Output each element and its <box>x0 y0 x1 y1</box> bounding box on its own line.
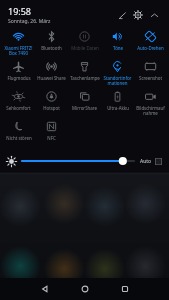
button[interactable]: Einstellungen <box>130 7 146 23</box>
staticText: MirrorShare <box>72 105 97 111</box>
button[interactable]: Auto <box>139 158 163 165</box>
staticText: 19:58 <box>8 5 32 17</box>
staticText: Hotspot <box>43 105 60 111</box>
button[interactable]: NFC <box>35 120 68 141</box>
button[interactable]: Screenshot <box>134 60 167 81</box>
button[interactable]: Ultra-Akku <box>101 90 134 111</box>
button[interactable]: Helligkeit <box>22 155 134 167</box>
button[interactable]: Nicht stören <box>2 120 35 141</box>
staticText: Bluetooth <box>41 45 62 51</box>
staticText: Ultra-Akku <box>107 105 129 111</box>
staticText: Taschenlampe <box>70 75 100 81</box>
button[interactable]: Einklappen <box>146 7 162 23</box>
staticText: Auto <box>140 158 152 165</box>
staticText: Standortinformationen <box>102 75 133 87</box>
button[interactable]: Bildschirmaufnahme <box>134 90 167 117</box>
button[interactable]: Huawei Share <box>35 60 68 81</box>
staticText: Bildschirmaufnahme <box>135 105 166 117</box>
button[interactable]: Xiaomi FRITZ!Box 7490 <box>2 30 35 57</box>
staticText: Huawei Share <box>37 75 66 81</box>
button[interactable]: Zurück <box>30 278 60 300</box>
staticText: Xiaomi FRITZ!Box 7490 <box>3 45 34 57</box>
staticText: Flugmodus <box>7 75 31 81</box>
staticText: NFC <box>47 135 56 141</box>
staticText: Mobile Daten <box>71 45 99 51</box>
staticText: Sonntag, 26. März <box>8 18 51 25</box>
staticText: Töne <box>113 45 123 51</box>
button[interactable]: Startbildschirm <box>70 278 100 300</box>
button[interactable]: Taschenlampe <box>68 60 101 81</box>
button[interactable]: Standortinformationen <box>101 60 134 87</box>
button[interactable]: Auto-Drehen <box>134 30 167 51</box>
button[interactable]: Mobile Daten <box>68 30 101 51</box>
button[interactable]: Flugmodus <box>2 60 35 81</box>
staticText: Screenshot <box>139 75 162 81</box>
staticText: Auto-Drehen <box>137 45 164 51</box>
staticText: Nicht stören <box>6 135 32 141</box>
button[interactable]: Übersicht <box>110 278 140 300</box>
button[interactable]: Hotspot <box>35 90 68 111</box>
button[interactable]: Bearbeiten <box>114 7 130 23</box>
button[interactable]: Töne <box>101 30 134 51</box>
button[interactable]: Sehkomfort <box>2 90 35 111</box>
staticText: Sehkomfort <box>6 105 31 111</box>
button[interactable]: MirrorShare <box>68 90 101 111</box>
button[interactable]: Bluetooth <box>35 30 68 51</box>
